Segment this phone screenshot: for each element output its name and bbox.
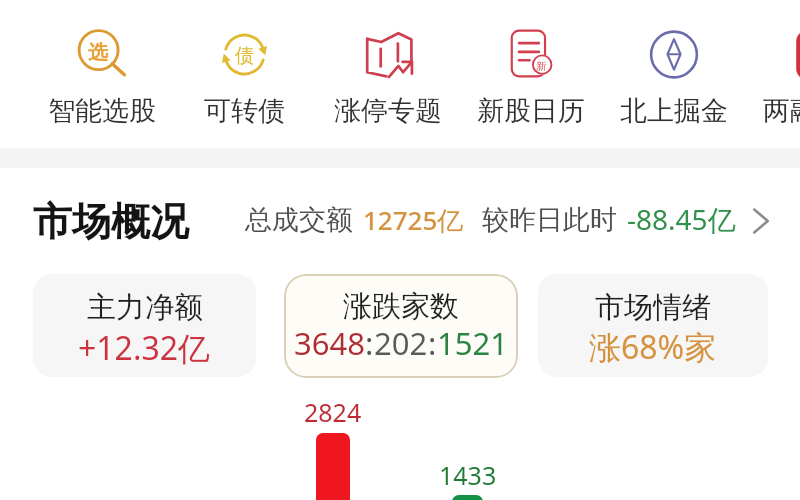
button[interactable]: 可转债 (173, 14, 316, 136)
button[interactable] (0, 185, 800, 247)
staticText: 12725亿 (363, 202, 464, 238)
staticText: 可转债 (204, 94, 285, 128)
other: 北上掘金 (648, 28, 700, 80)
staticText: 智能选股 (48, 94, 156, 128)
staticText: 市场情绪 (595, 289, 711, 326)
staticText: 新股日历 (477, 94, 585, 128)
staticText: 涨跌家数 (343, 288, 459, 325)
button[interactable]: 智能选股 (30, 14, 173, 136)
staticText: 1433 (439, 458, 497, 492)
staticText: 1521 (437, 322, 508, 364)
staticText: 较昨日此时 (482, 203, 617, 237)
staticText: 新 (536, 59, 547, 73)
staticText: : (365, 322, 374, 364)
other: 涨停专题 (362, 28, 414, 80)
staticText: 总成交额 (245, 203, 353, 237)
button[interactable]: 两融标的 (745, 14, 800, 136)
staticText: -88.45亿 (627, 200, 736, 238)
staticText: +12.32亿 (78, 326, 211, 370)
button[interactable]: 涨跌家数 (284, 274, 518, 378)
staticText: 3648 (294, 322, 365, 364)
staticText: 市场概况 (33, 197, 189, 246)
staticText: 两融标的 (763, 94, 800, 128)
staticText: 北上掘金 (620, 94, 728, 128)
other: More (751, 206, 771, 236)
other: 智能选股 (76, 28, 128, 80)
staticText: 涨68%家 (589, 325, 717, 369)
other: 新股日历 (505, 28, 557, 80)
staticText: 2824 (304, 395, 362, 429)
staticText: 202 (374, 322, 428, 364)
staticText: 选 (88, 40, 108, 65)
button[interactable]: 涨停专题 (316, 14, 459, 136)
button[interactable]: 主力净额 (33, 274, 256, 377)
button[interactable]: 北上掘金 (602, 14, 745, 136)
staticText: : (428, 322, 437, 364)
staticText: 主力净额 (87, 289, 203, 326)
other: 两融标的 (791, 28, 800, 80)
staticText: 债 (235, 44, 254, 68)
other: 可转债 (219, 28, 271, 80)
button[interactable]: 新股日历 (459, 14, 602, 136)
staticText: 涨停专题 (334, 94, 442, 128)
button[interactable]: 市场情绪 (538, 274, 768, 377)
